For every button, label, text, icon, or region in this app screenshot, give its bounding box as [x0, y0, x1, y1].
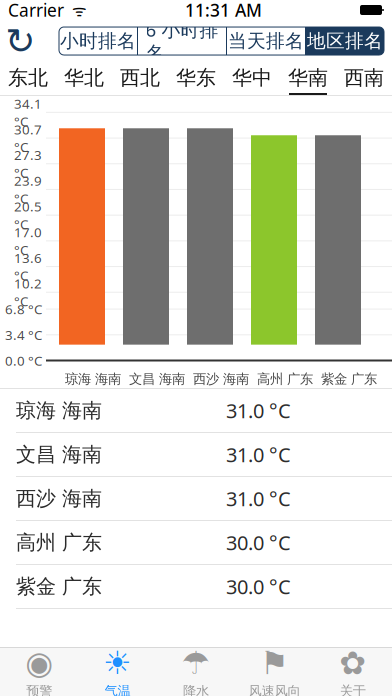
staticText: ⚑	[260, 645, 289, 681]
button[interactable]: 华中	[224, 62, 280, 95]
staticText: 西沙 海南	[16, 486, 102, 511]
staticText: 0.0 °C	[5, 352, 42, 369]
button[interactable]: 华东	[168, 62, 224, 95]
staticText: 31.0 °C	[226, 397, 291, 424]
staticText: 文昌 海南	[129, 371, 185, 387]
button[interactable]: 西沙 海南	[0, 477, 392, 521]
staticText: Carrier	[8, 0, 64, 21]
staticText: 西北	[120, 65, 160, 90]
staticText: 30.0 °C	[226, 529, 291, 556]
button[interactable]: ☀	[78, 648, 157, 696]
staticText: 华中	[232, 65, 272, 90]
button[interactable]: 琼海 海南	[0, 389, 392, 433]
staticText: 东北	[8, 65, 48, 90]
staticText: 高州 广东	[257, 371, 313, 387]
button[interactable]: 华南	[280, 62, 336, 95]
staticText: ◉	[25, 645, 53, 681]
button[interactable]: 文昌 海南	[0, 433, 392, 477]
staticText: 紫金 广东	[321, 371, 377, 387]
staticText: 30.0 °C	[226, 573, 291, 600]
staticText: 西南	[344, 65, 384, 90]
staticText: 小时排名	[60, 29, 136, 52]
staticText: 3.4 °C	[5, 326, 42, 344]
staticText: 降水	[183, 683, 209, 696]
button[interactable]: 刷新	[0, 23, 40, 59]
button[interactable]: 东北	[0, 62, 56, 95]
button[interactable]: ◉	[0, 648, 78, 696]
staticText: 11:31 AM	[185, 0, 262, 21]
button[interactable]: 地区排名	[306, 27, 384, 55]
button[interactable]: 当天排名	[227, 27, 305, 55]
staticText: 20.5 °C	[14, 197, 42, 233]
staticText: 30.7 °C	[14, 120, 42, 156]
staticText: 文昌 海南	[16, 442, 102, 467]
staticText: 34.1 °C	[14, 95, 42, 130]
button[interactable]: 紫金 广东	[0, 565, 392, 609]
staticText: 琼海 海南	[16, 398, 102, 423]
staticText: 华南	[288, 65, 328, 90]
staticText: 琼海 海南	[65, 371, 121, 387]
staticText: 23.9 °C	[14, 172, 42, 207]
staticText: 预警	[26, 683, 52, 696]
staticText: ☀	[103, 645, 132, 681]
staticText: 17.0 °C	[14, 223, 42, 259]
staticText: 西沙 海南	[193, 371, 249, 387]
staticText: 高州 广东	[16, 530, 102, 555]
staticText: 风速风向	[248, 683, 300, 696]
staticText: 13.6 °C	[14, 249, 42, 284]
button[interactable]: 小时排名	[59, 27, 137, 55]
button[interactable]: ✿	[314, 648, 392, 696]
staticText: 地区排名	[307, 29, 383, 52]
staticText: 31.0 °C	[226, 485, 291, 512]
staticText: 31.0 °C	[226, 441, 291, 468]
button[interactable]: 高州 广东	[0, 521, 392, 565]
staticText: 10.2 °C	[14, 275, 42, 310]
staticText: ☂	[181, 645, 210, 681]
button[interactable]: 华北	[56, 62, 112, 95]
staticText: 6 小时排名	[145, 17, 218, 65]
staticText: 华东	[176, 65, 216, 90]
button[interactable]: 西北	[112, 62, 168, 95]
staticText: 紫金 广东	[16, 574, 102, 599]
staticText: ✿	[339, 645, 366, 681]
staticText: 6.8 °C	[5, 300, 42, 318]
staticText: 华北	[64, 65, 104, 90]
button[interactable]: 6 小时排名	[138, 27, 226, 55]
staticText: ᯤ	[64, 0, 87, 21]
staticText: 27.3 °C	[14, 146, 42, 181]
button[interactable]: 西南	[336, 62, 392, 95]
staticText: 当天排名	[228, 29, 304, 52]
button[interactable]: ⚑	[235, 648, 314, 696]
staticText: 关于	[340, 683, 366, 696]
button[interactable]: ☂	[157, 648, 235, 696]
staticText: 气温	[105, 683, 131, 696]
staticText: ↻	[5, 21, 35, 61]
